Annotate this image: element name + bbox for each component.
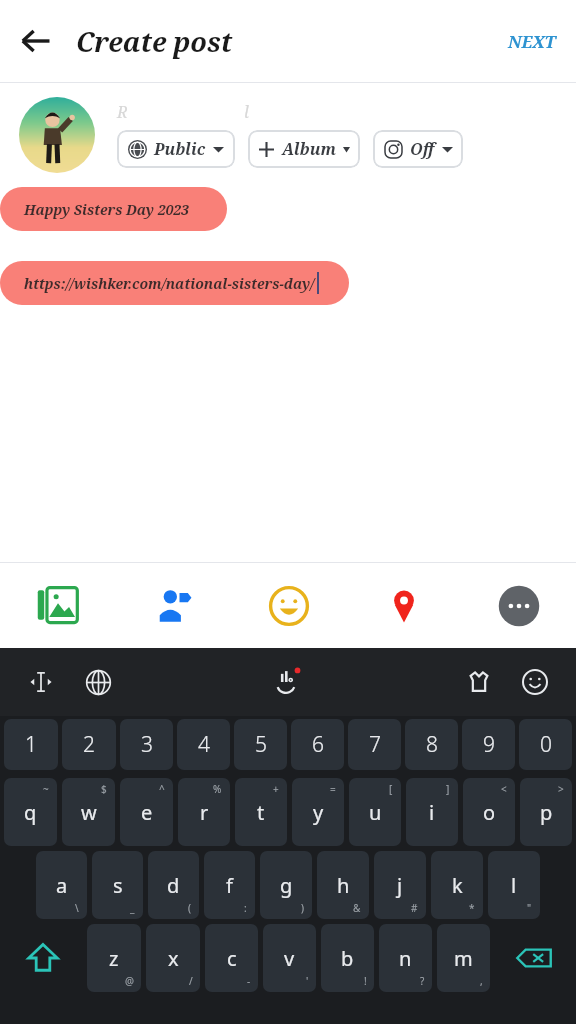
button[interactable]: a [36, 851, 87, 919]
staticText: \ [75, 901, 79, 915]
staticText: 4 [198, 730, 210, 759]
staticText: w [81, 799, 97, 826]
staticText: % [213, 782, 222, 796]
button[interactable]: More [461, 563, 576, 648]
button[interactable]: 1 [4, 719, 58, 770]
button[interactable]: 6 [291, 719, 344, 770]
button[interactable]: q [4, 778, 57, 846]
staticText: l [511, 872, 517, 899]
button[interactable]: Change language [76, 660, 120, 704]
button[interactable]: u [349, 778, 401, 846]
staticText: z [109, 945, 119, 972]
staticText: = [330, 782, 336, 796]
button[interactable]: 8 [405, 719, 458, 770]
staticText: g [280, 872, 293, 899]
staticText: s [113, 872, 123, 899]
button[interactable]: Album [248, 130, 360, 168]
button[interactable]: Backspace [495, 924, 572, 992]
staticText: ^ [159, 782, 165, 796]
staticText: $ [101, 782, 107, 796]
button[interactable]: m [437, 924, 490, 992]
staticText: https://wishker.com/national-sisters-day… [24, 274, 315, 293]
button[interactable]: t [235, 778, 287, 846]
staticText: # [411, 901, 418, 915]
button[interactable]: Tag people [116, 563, 231, 648]
button[interactable]: Happy Sisters Day 2023 [0, 187, 227, 231]
button[interactable]: y [292, 778, 344, 846]
button[interactable]: z [87, 924, 141, 992]
button[interactable]: v [263, 924, 316, 992]
button[interactable]: 0 [519, 719, 572, 770]
staticText: 6 [312, 730, 324, 759]
staticText: n [399, 945, 412, 972]
staticText: 9 [483, 730, 495, 759]
staticText: Create post [76, 23, 233, 60]
button[interactable]: 5 [234, 719, 287, 770]
button[interactable]: l [488, 851, 540, 919]
staticText: ] [446, 782, 450, 796]
button[interactable]: c [205, 924, 258, 992]
button[interactable]: Emoji [512, 659, 558, 705]
button[interactable]: r [178, 778, 230, 846]
button[interactable]: Back [8, 13, 64, 69]
button[interactable]: s [92, 851, 143, 919]
button[interactable]: p [520, 778, 572, 846]
staticText: 3 [141, 730, 153, 759]
button[interactable]: 7 [348, 719, 401, 770]
button[interactable]: NEXT [502, 22, 562, 61]
button[interactable]: j [374, 851, 426, 919]
staticText: m [454, 945, 473, 972]
staticText: o [483, 799, 496, 826]
button[interactable]: Move cursor [20, 661, 62, 703]
staticText: * [469, 901, 475, 915]
staticText: & [353, 901, 361, 915]
staticText: x [168, 945, 179, 972]
button[interactable]: Feeling [231, 563, 346, 648]
staticText: " [527, 901, 532, 915]
staticText: - [247, 974, 251, 988]
button[interactable]: Location [346, 563, 461, 648]
button[interactable]: e [120, 778, 173, 846]
button[interactable]: Shift [4, 924, 82, 992]
button[interactable]: b [321, 924, 374, 992]
staticText: f [226, 872, 233, 899]
button[interactable]: Public [117, 130, 235, 168]
staticText: u [369, 799, 382, 826]
staticText: 5 [255, 730, 267, 759]
staticText: 0 [540, 730, 552, 759]
button[interactable]: 3 [120, 719, 173, 770]
staticText: ~ [43, 782, 49, 796]
button[interactable]: o [463, 778, 515, 846]
button[interactable]: d [148, 851, 199, 919]
button[interactable]: Keyboard menu [262, 656, 314, 708]
button[interactable]: Off [373, 130, 463, 168]
button[interactable]: https://wishker.com/national-sisters-day… [0, 261, 349, 305]
staticText: [ [389, 782, 393, 796]
staticText: c [227, 945, 237, 972]
button[interactable]: 9 [462, 719, 515, 770]
button[interactable]: f [204, 851, 255, 919]
staticText: R [117, 101, 128, 123]
button[interactable]: Theme [456, 659, 502, 705]
staticText: 1 [25, 730, 37, 759]
button[interactable]: k [431, 851, 483, 919]
button[interactable]: Profile photo [19, 97, 95, 173]
button[interactable]: 4 [177, 719, 230, 770]
button[interactable]: x [146, 924, 200, 992]
button[interactable]: h [317, 851, 369, 919]
staticText: NEXT [508, 30, 556, 53]
button[interactable]: Photo [0, 563, 116, 648]
staticText: : [244, 901, 247, 915]
staticText: v [284, 945, 295, 972]
staticText: 8 [426, 730, 438, 759]
staticText: Album [282, 138, 336, 160]
staticText: < [501, 782, 507, 796]
button[interactable]: 2 [62, 719, 116, 770]
button[interactable]: n [379, 924, 432, 992]
staticText: q [24, 799, 37, 826]
button[interactable]: g [260, 851, 312, 919]
button[interactable]: w [62, 778, 115, 846]
staticText: p [540, 799, 553, 826]
staticText: l [244, 101, 249, 123]
button[interactable]: i [406, 778, 458, 846]
